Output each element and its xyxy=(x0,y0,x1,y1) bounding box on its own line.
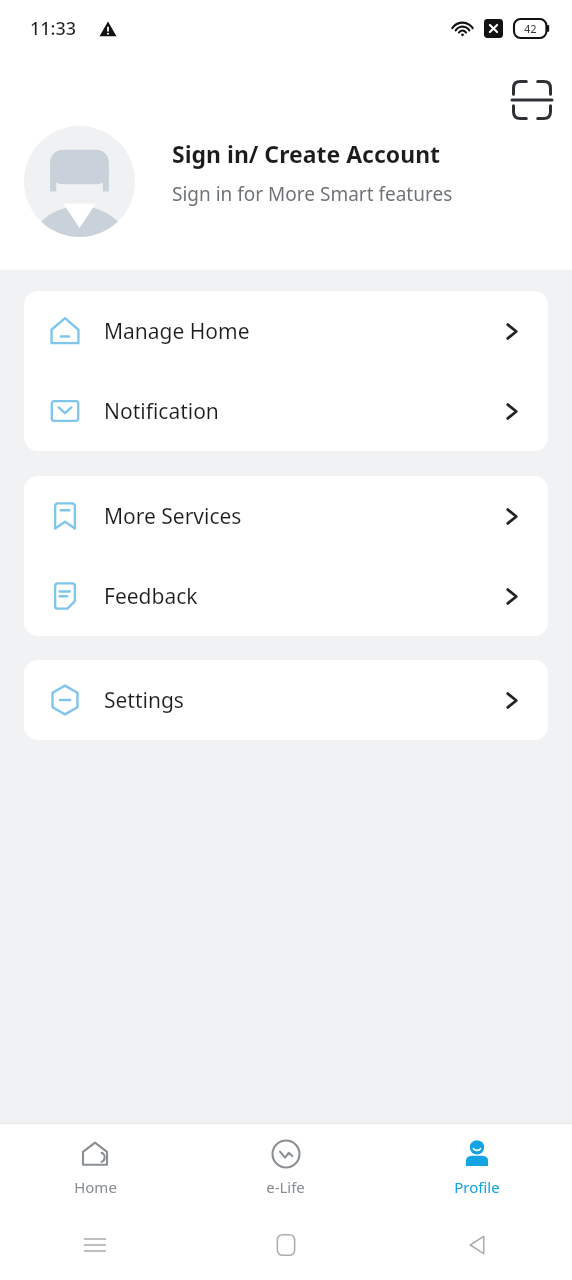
staticText: Sign in/ Create Account xyxy=(172,138,441,169)
staticText: Feedback xyxy=(104,582,198,611)
staticText: Sign in for More Smart features xyxy=(172,181,453,207)
staticText: 11:33 xyxy=(30,16,77,41)
staticText: Profile xyxy=(454,1177,500,1197)
button[interactable]: More Services xyxy=(24,476,548,556)
staticText: Settings xyxy=(104,686,184,715)
staticText: Home xyxy=(74,1177,117,1197)
staticText: e-Life xyxy=(266,1177,305,1197)
button[interactable]: Profile xyxy=(381,1124,572,1210)
button[interactable]: Manage Home xyxy=(24,291,548,371)
button[interactable]: Scan code xyxy=(504,72,560,128)
button[interactable]: Sign in/ Create Account xyxy=(0,126,572,237)
staticText: More Services xyxy=(104,502,242,531)
button[interactable]: Home xyxy=(190,1210,381,1280)
button[interactable]: Notification xyxy=(24,371,548,451)
button[interactable]: Recent apps xyxy=(0,1210,190,1280)
staticText: Notification xyxy=(104,397,219,426)
staticText: Manage Home xyxy=(104,317,250,346)
button[interactable]: Back xyxy=(381,1210,572,1280)
staticText: 42 xyxy=(524,21,537,36)
button[interactable]: e-Life xyxy=(190,1124,381,1210)
button[interactable]: Home xyxy=(0,1124,190,1210)
button[interactable]: Settings xyxy=(24,660,548,740)
button[interactable]: Feedback xyxy=(24,556,548,636)
